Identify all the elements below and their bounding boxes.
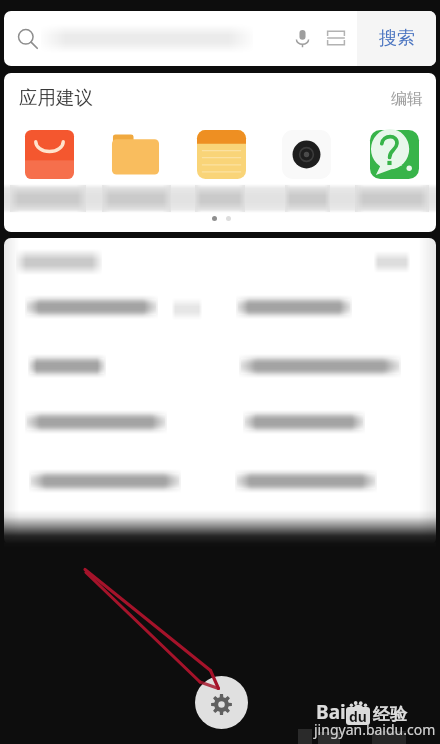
staticText: 应用建议 — [19, 86, 93, 109]
staticText: 搜索 — [379, 27, 415, 50]
button[interactable]: Voice search — [286, 22, 318, 54]
button[interactable]: App shortcut 2 — [102, 123, 170, 205]
button[interactable]: 搜索 — [357, 11, 436, 66]
staticText: Bai — [316, 699, 346, 725]
staticText: du — [349, 707, 367, 725]
button[interactable]: Scan — [320, 22, 352, 54]
button[interactable]: App shortcut 1 — [16, 123, 84, 205]
button[interactable]: 编辑 — [387, 86, 427, 112]
staticText: 经验 — [373, 704, 407, 725]
button[interactable]: App shortcut 5 — [361, 123, 429, 205]
button[interactable]: App shortcut 4 — [273, 123, 341, 205]
button[interactable]: App shortcut 3 — [188, 123, 256, 205]
staticText: 编辑 — [391, 89, 423, 109]
staticText: jingyan.baidu.com — [314, 720, 436, 739]
button[interactable]: Settings — [195, 676, 248, 729]
button[interactable]: Search — [12, 23, 44, 55]
